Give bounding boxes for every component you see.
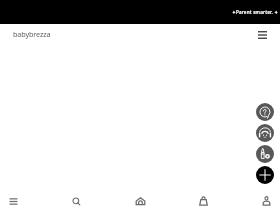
- button[interactable]: Bag: [190, 192, 217, 210]
- button[interactable]: Support: [256, 124, 274, 142]
- button[interactable]: Bottle: [256, 145, 274, 163]
- button[interactable]: Home: [127, 192, 154, 210]
- button[interactable]: Search: [63, 192, 90, 210]
- button[interactable]: Help: [256, 103, 274, 121]
- staticText: babybrezza: [13, 29, 51, 39]
- button[interactable]: Account: [253, 192, 280, 210]
- button[interactable]: Menu: [254, 27, 270, 43]
- button[interactable]: Menu: [0, 192, 27, 210]
- staticText: ✦Parent smarter. ✦: [232, 9, 279, 15]
- button[interactable]: Add: [256, 166, 274, 184]
